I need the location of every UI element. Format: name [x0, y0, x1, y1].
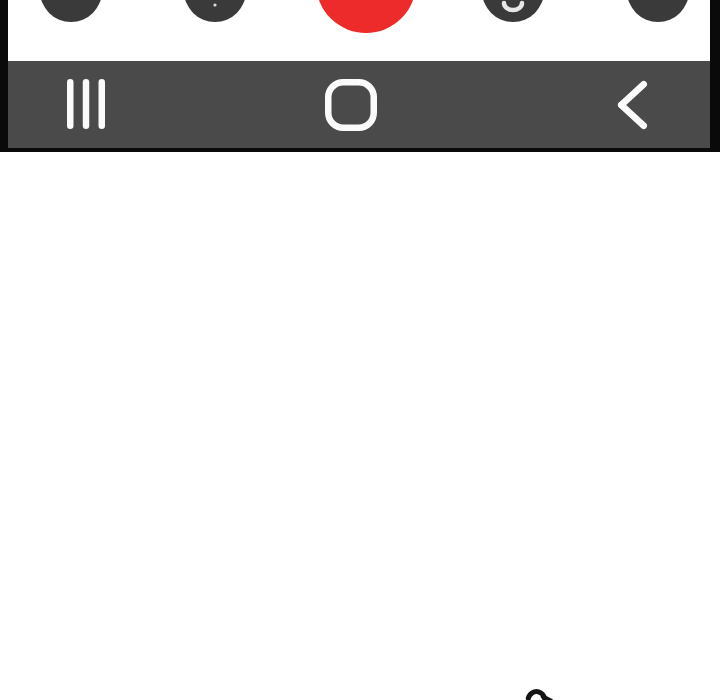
button[interactable]: Profile [627, 0, 689, 22]
button[interactable]: Home [315, 69, 387, 141]
button[interactable]: Library [482, 0, 544, 22]
button[interactable]: Record [316, 0, 416, 33]
button[interactable]: Search [184, 0, 246, 22]
button[interactable]: Recent apps [52, 71, 120, 137]
button[interactable]: Home [40, 0, 102, 22]
button[interactable]: Back [598, 71, 666, 139]
